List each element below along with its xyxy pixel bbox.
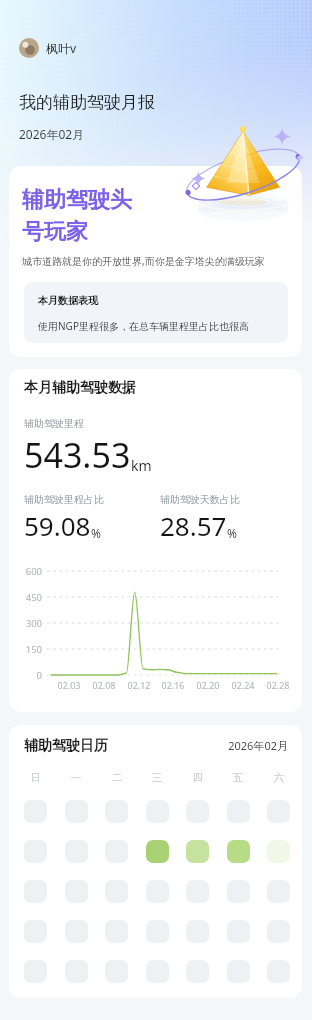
button[interactable]	[227, 800, 250, 823]
staticText: 六	[267, 771, 291, 784]
staticText: 02.08	[90, 679, 118, 691]
staticText: 450	[17, 591, 42, 604]
button[interactable]	[267, 960, 290, 983]
staticText: 一	[64, 771, 88, 784]
staticText: 辅助驾驶日历	[24, 737, 108, 755]
button[interactable]	[105, 920, 128, 943]
button[interactable]	[146, 880, 169, 903]
staticText: 02.03	[55, 679, 83, 691]
button[interactable]	[65, 920, 88, 943]
button[interactable]	[24, 800, 47, 823]
button[interactable]	[9, 166, 302, 357]
button[interactable]	[146, 960, 169, 983]
button[interactable]	[227, 960, 250, 983]
staticText: 五	[226, 771, 250, 784]
staticText: 300	[17, 617, 42, 630]
staticText: 02.20	[194, 679, 222, 691]
button[interactable]	[267, 880, 290, 903]
button[interactable]	[267, 800, 290, 823]
button[interactable]	[186, 800, 209, 823]
button[interactable]	[24, 880, 47, 903]
button[interactable]	[24, 840, 47, 863]
staticText: %	[91, 525, 101, 541]
button[interactable]	[186, 840, 209, 863]
button[interactable]	[105, 800, 128, 823]
staticText: 本月数据表现	[38, 294, 98, 307]
button[interactable]	[227, 880, 250, 903]
button[interactable]	[65, 960, 88, 983]
button[interactable]	[24, 960, 47, 983]
staticText: 二	[105, 771, 129, 784]
staticText: 辅助驾驶里程占比	[24, 493, 104, 506]
button[interactable]	[227, 920, 250, 943]
staticText: 本月辅助驾驶数据	[24, 379, 136, 397]
button[interactable]	[186, 880, 209, 903]
button[interactable]	[65, 800, 88, 823]
button[interactable]	[105, 960, 128, 983]
staticText: 四	[186, 771, 210, 784]
button[interactable]	[227, 840, 250, 863]
button[interactable]	[65, 840, 88, 863]
staticText: 辅助驾驶里程	[24, 417, 84, 430]
button[interactable]	[65, 880, 88, 903]
staticText: 02.12	[125, 679, 153, 691]
button[interactable]	[146, 840, 169, 863]
button[interactable]: 本月数据表现	[24, 282, 288, 343]
button[interactable]	[105, 840, 128, 863]
staticText: 城市道路就是你的开放世界,而你是金字塔尖的满级玩家	[22, 254, 265, 268]
staticText: 使用NGP里程很多，在总车辆里程里占比也很高	[38, 319, 249, 333]
staticText: 02.24	[229, 679, 257, 691]
staticText: km	[131, 456, 152, 475]
button[interactable]: 枫叶v	[19, 38, 77, 58]
staticText: 543.53	[24, 432, 131, 478]
button[interactable]	[267, 920, 290, 943]
staticText: 枫叶v	[46, 40, 77, 56]
button[interactable]	[186, 920, 209, 943]
button[interactable]	[24, 920, 47, 943]
staticText: 辅助驾驶天数占比	[160, 493, 240, 506]
staticText: 2026年02月	[202, 738, 288, 753]
button[interactable]	[267, 840, 290, 863]
button[interactable]	[146, 920, 169, 943]
staticText: %	[227, 525, 237, 541]
staticText: 我的辅助驾驶月报	[19, 92, 155, 113]
staticText: 0	[17, 669, 42, 682]
staticText: 02.28	[264, 679, 292, 691]
staticText: 2026年02月	[19, 126, 85, 142]
staticText: 600	[17, 565, 42, 578]
staticText: 59.08	[24, 508, 91, 543]
button[interactable]	[186, 960, 209, 983]
staticText: 02.16	[159, 679, 187, 691]
staticText: 辅助驾驶头 号玩家	[22, 186, 132, 245]
staticText: 28.57	[160, 508, 227, 543]
button[interactable]	[146, 800, 169, 823]
staticText: 三	[145, 771, 169, 784]
staticText: 150	[17, 643, 42, 656]
button[interactable]	[105, 880, 128, 903]
staticText: 日	[24, 771, 48, 784]
